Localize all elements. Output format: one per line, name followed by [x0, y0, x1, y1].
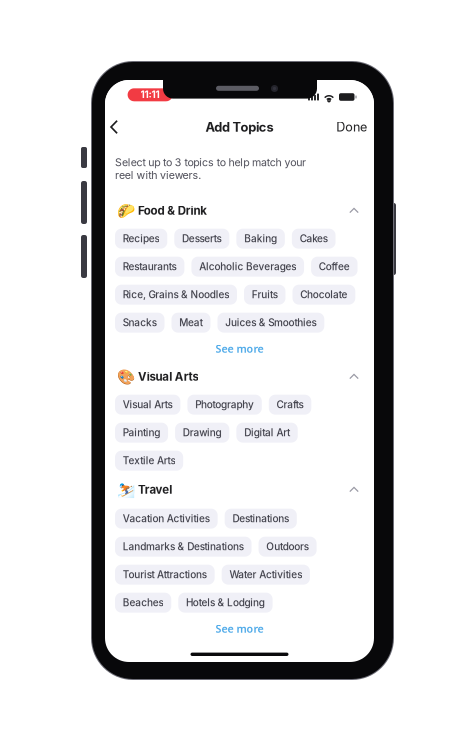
button[interactable]: See more: [105, 342, 374, 356]
staticText: Painting: [123, 427, 160, 439]
staticText: Outdoors: [266, 541, 309, 553]
staticText: Hotels & Lodging: [186, 597, 265, 609]
button[interactable]: Desserts: [174, 229, 229, 249]
button[interactable]: Outdoors: [258, 537, 317, 557]
staticText: Snacks: [123, 317, 157, 329]
staticText: Coffee: [319, 261, 350, 273]
button[interactable]: 🎨: [105, 367, 374, 387]
button[interactable]: Coffee: [311, 257, 357, 277]
staticText: Travel: [138, 483, 172, 497]
button[interactable]: Painting: [115, 423, 168, 443]
button[interactable]: Baking: [236, 229, 285, 249]
staticText: 🌮: [116, 202, 134, 219]
button[interactable]: Visual Arts: [115, 395, 180, 415]
staticText: Visual Arts: [123, 399, 173, 411]
staticText: Juices & Smoothies: [225, 317, 316, 329]
button[interactable]: Textile Arts: [115, 451, 183, 471]
staticText: 11:11: [141, 89, 160, 101]
staticText: Rice, Grains & Noodles: [123, 289, 229, 301]
button[interactable]: Beaches: [115, 593, 171, 613]
staticText: Alcoholic Beverages: [199, 261, 296, 273]
button[interactable]: Back: [105, 110, 126, 144]
button[interactable]: Done: [328, 110, 374, 144]
button[interactable]: Destinations: [225, 509, 297, 529]
staticText: Visual Arts: [138, 370, 198, 384]
button[interactable]: Snacks: [115, 313, 164, 333]
staticText: Crafts: [277, 399, 303, 411]
staticText: Chocolate: [300, 289, 347, 301]
button[interactable]: See more: [105, 622, 374, 636]
button[interactable]: Alcoholic Beverages: [191, 257, 304, 277]
button[interactable]: Vacation Activities: [115, 509, 218, 529]
button[interactable]: Chocolate: [292, 285, 355, 305]
button[interactable]: Meat: [171, 313, 210, 333]
button[interactable]: Drawing: [175, 423, 229, 443]
button[interactable]: Fruits: [244, 285, 285, 305]
button[interactable]: 🌮: [105, 201, 374, 221]
staticText: See more: [215, 342, 263, 356]
button[interactable]: Hotels & Lodging: [178, 593, 273, 613]
staticText: Destinations: [232, 513, 289, 525]
staticText: Landmarks & Destinations: [123, 541, 244, 553]
staticText: Done: [336, 119, 367, 135]
button[interactable]: Cakes: [292, 229, 335, 249]
staticText: Add Topics: [205, 119, 274, 135]
button[interactable]: Tourist Attractions: [115, 565, 215, 585]
staticText: Restaurants: [123, 261, 177, 273]
staticText: Digital Art: [244, 427, 290, 439]
staticText: Meat: [179, 317, 203, 329]
staticText: Drawing: [183, 427, 222, 439]
button[interactable]: Landmarks & Destinations: [115, 537, 251, 557]
staticText: ⛷️: [116, 481, 134, 498]
button[interactable]: Recipes: [115, 229, 167, 249]
button[interactable]: Restaurants: [115, 257, 184, 277]
button[interactable]: Photography: [187, 395, 262, 415]
staticText: Beaches: [123, 597, 163, 609]
button[interactable]: ⛷️: [105, 480, 374, 500]
button[interactable]: Water Activities: [222, 565, 310, 585]
button[interactable]: Rice, Grains & Noodles: [115, 285, 237, 305]
staticText: Fruits: [252, 289, 278, 301]
staticText: 🎨: [116, 368, 134, 385]
button[interactable]: Digital Art: [236, 423, 298, 443]
staticText: Textile Arts: [123, 455, 175, 467]
staticText: Vacation Activities: [123, 513, 210, 525]
staticText: Cakes: [300, 233, 328, 245]
staticText: Water Activities: [229, 569, 302, 581]
staticText: Select up to 3 topics to help match your…: [115, 156, 306, 182]
staticText: Baking: [244, 233, 277, 245]
staticText: Desserts: [182, 233, 222, 245]
staticText: Recipes: [123, 233, 159, 245]
button[interactable]: Crafts: [269, 395, 311, 415]
staticText: See more: [215, 622, 263, 636]
button[interactable]: Juices & Smoothies: [217, 313, 324, 333]
staticText: Tourist Attractions: [123, 569, 207, 581]
staticText: Photography: [195, 399, 254, 411]
staticText: Food & Drink: [138, 204, 207, 218]
